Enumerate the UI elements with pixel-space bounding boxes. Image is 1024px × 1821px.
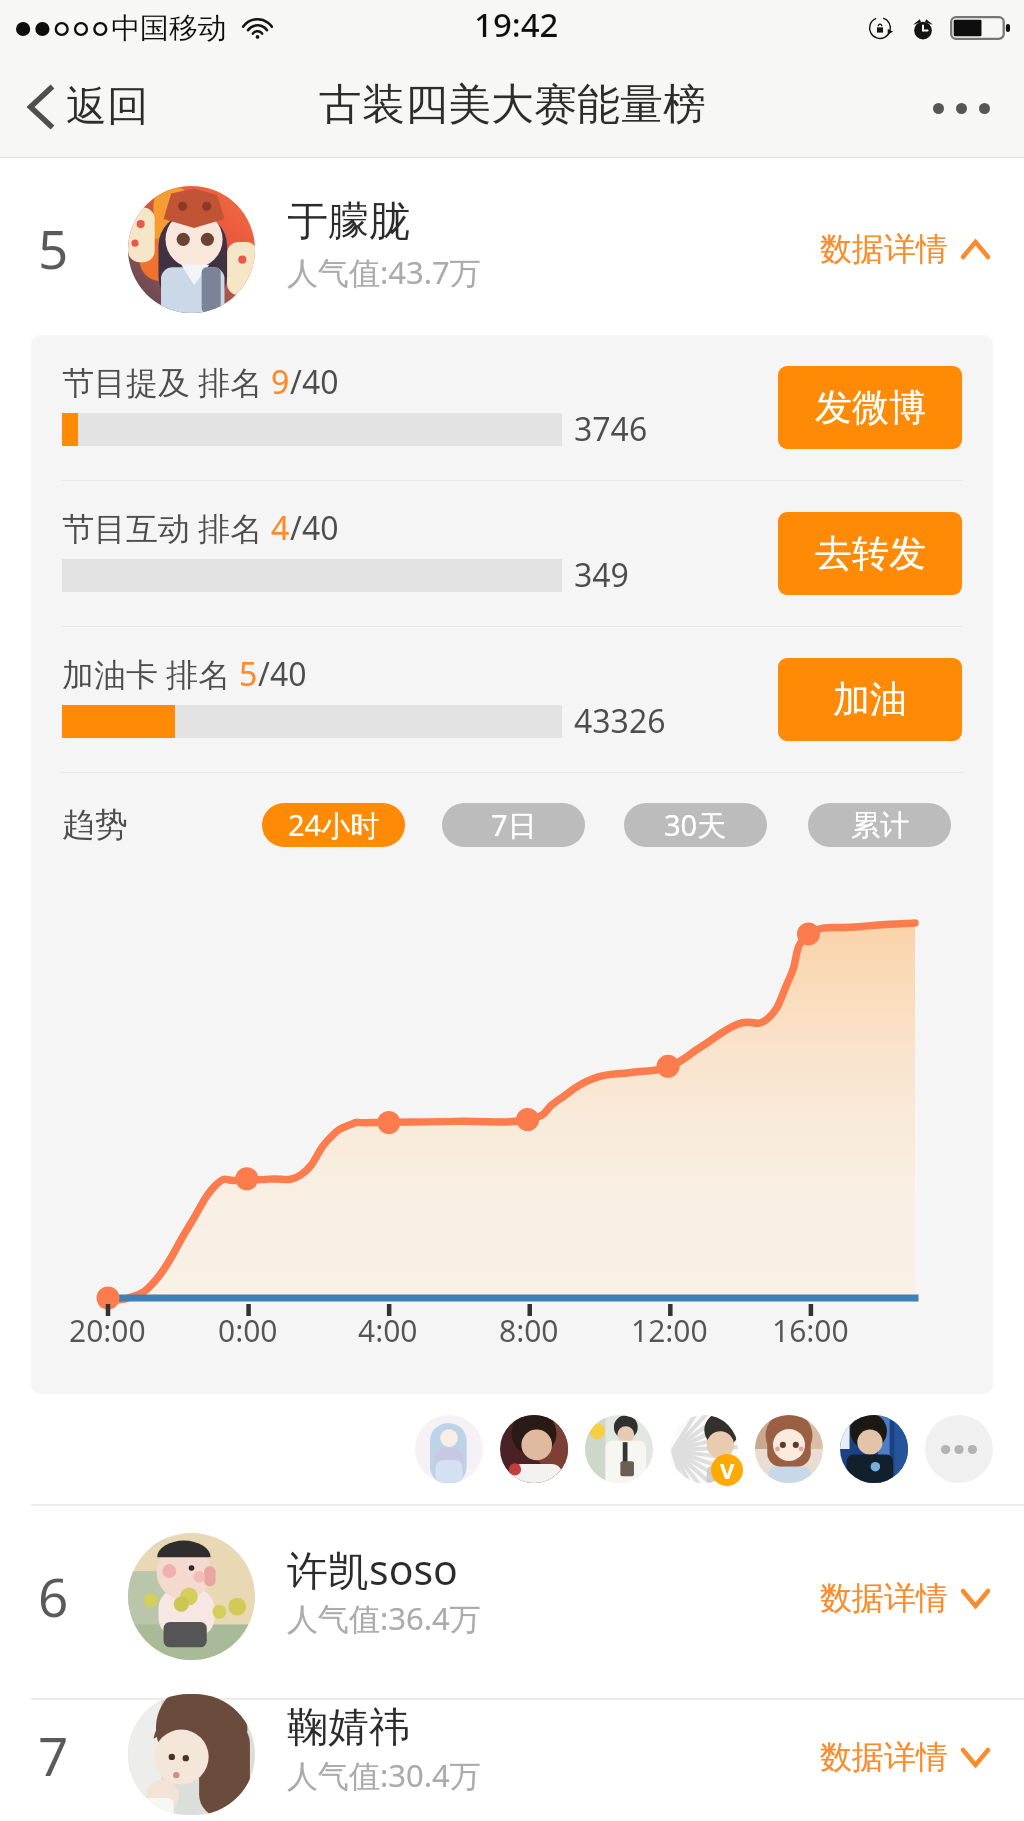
staticText: /40 <box>290 506 339 550</box>
button[interactable]: 7 <box>0 1700 1024 1821</box>
button[interactable]: 数据详情 <box>806 215 1024 283</box>
staticText: 43326 <box>574 699 666 743</box>
button[interactable]: 数据详情 <box>806 1564 1024 1632</box>
button[interactable]: 6 <box>0 1506 1024 1698</box>
staticText: 去转发 <box>815 530 926 577</box>
staticText: /40 <box>258 652 307 696</box>
button[interactable]: 数据详情 <box>806 1723 1024 1791</box>
staticText: 19:42 <box>474 2 559 47</box>
staticText: 中国移动 <box>111 10 227 47</box>
staticText: 6 <box>38 1560 69 1632</box>
button[interactable]: 24小时 <box>262 803 405 847</box>
staticText: /40 <box>290 360 339 404</box>
button[interactable]: 30天 <box>624 803 767 847</box>
staticText: 人气值:43.7万 <box>287 251 481 293</box>
staticText: 20:00 <box>69 1310 146 1351</box>
button[interactable]: Supporter <box>840 1415 908 1483</box>
staticText: 7日 <box>491 805 537 845</box>
button[interactable]: 去转发 <box>778 512 962 595</box>
staticText: 8:00 <box>499 1310 559 1351</box>
staticText: 趋势 <box>62 804 128 846</box>
staticText: 数据详情 <box>820 1578 948 1618</box>
staticText: 数据详情 <box>820 1737 948 1777</box>
staticText: 鞠婧祎 <box>287 1702 410 1754</box>
staticText: 于朦胧 <box>287 196 410 248</box>
button[interactable]: Supporter <box>585 1415 653 1483</box>
staticText: 9 <box>271 360 290 404</box>
staticText: 24小时 <box>288 805 380 845</box>
staticText: 7 <box>38 1719 69 1791</box>
staticText: 加油 <box>833 676 907 723</box>
staticText: 节目互动 排名 <box>62 506 271 550</box>
staticText: 许凯soso <box>287 1541 458 1597</box>
staticText: 3746 <box>574 407 648 451</box>
button[interactable]: Supporter <box>500 1415 568 1483</box>
staticText: 数据详情 <box>820 229 948 269</box>
staticText: 累计 <box>851 807 909 844</box>
staticText: V <box>720 1455 735 1485</box>
button[interactable]: 返回 <box>0 71 166 143</box>
button[interactable]: More supporters <box>925 1415 993 1483</box>
staticText: 人气值:30.4万 <box>287 1754 481 1796</box>
staticText: 人气值:36.4万 <box>287 1597 481 1639</box>
staticText: 节目提及 排名 <box>62 360 271 404</box>
staticText: 发微博 <box>815 384 926 431</box>
staticText: 返回 <box>66 81 148 133</box>
button[interactable]: 累计 <box>808 803 951 847</box>
button[interactable]: Supporter <box>670 1415 738 1483</box>
staticText: 349 <box>574 553 629 597</box>
staticText: 16:00 <box>772 1310 849 1351</box>
button[interactable]: 7日 <box>442 803 585 847</box>
staticText: 30天 <box>664 805 727 845</box>
button[interactable]: Supporter <box>755 1415 823 1483</box>
staticText: 4 <box>271 506 290 550</box>
staticText: 5 <box>38 212 69 284</box>
staticText: 12:00 <box>631 1310 708 1351</box>
staticText: 5 <box>239 652 258 696</box>
button[interactable]: Supporter <box>415 1415 483 1483</box>
button[interactable]: 加油 <box>778 658 962 741</box>
staticText: 0:00 <box>218 1310 278 1351</box>
button[interactable]: 发微博 <box>778 366 962 449</box>
staticText: 4:00 <box>358 1310 418 1351</box>
staticText: 古装四美大赛能量榜 <box>319 78 706 132</box>
button[interactable]: More options <box>911 73 1012 144</box>
staticText: 加油卡 排名 <box>62 652 239 696</box>
button[interactable]: 5 <box>0 158 1024 335</box>
